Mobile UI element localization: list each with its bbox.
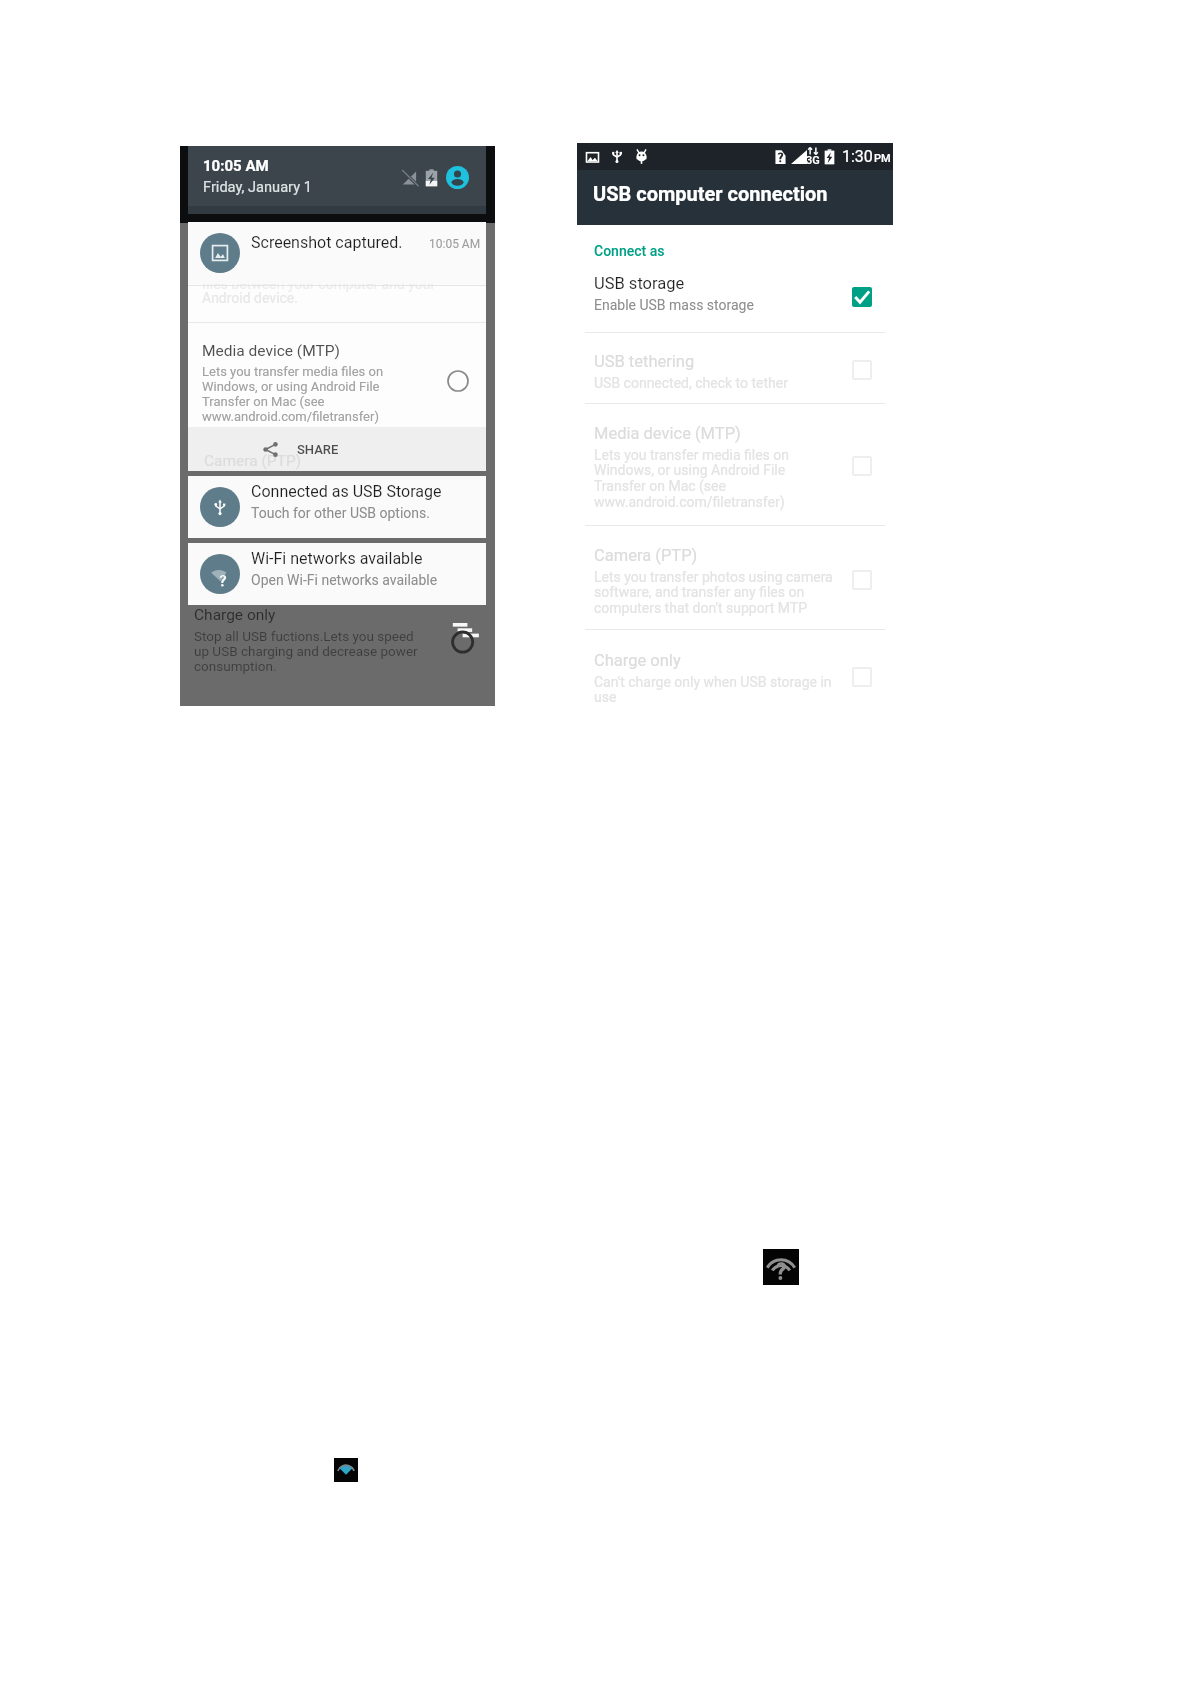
staticText: Lets you transfer media files on Windows… (202, 364, 384, 424)
button[interactable] (577, 264, 893, 324)
staticText: USB connected, check to tether (594, 375, 788, 391)
staticText: Camera (PTP) (204, 452, 302, 470)
button[interactable]: Wi-Fi networks available (188, 543, 486, 605)
staticText: Touch for other USB options. (251, 505, 430, 521)
button[interactable]: Connected as USB Storage (188, 476, 486, 538)
staticText: Screenshot captured. (251, 233, 403, 252)
staticText: USB tethering (594, 352, 695, 371)
staticText: 1:30 (842, 147, 873, 166)
staticText: Camera (PTP) (594, 546, 698, 565)
button[interactable]: Switch user (446, 166, 469, 189)
staticText: 10:05 AM (203, 157, 269, 175)
staticText: files between your computer and your (202, 276, 436, 292)
staticText: PM (874, 152, 891, 165)
staticText: Stop all USB fuctions.Lets you speed up … (194, 628, 418, 674)
staticText: Android device. (202, 290, 298, 306)
staticText: 3G (806, 154, 820, 167)
button[interactable] (577, 536, 893, 596)
staticText: Charge only (194, 606, 276, 624)
staticText: Media device (MTP) (594, 424, 741, 443)
staticText: Friday, January 1 (203, 178, 312, 195)
staticText: 10:05 AM (429, 237, 481, 251)
button[interactable] (577, 641, 893, 701)
staticText: Media device (MTP) (202, 342, 340, 360)
button[interactable] (577, 414, 893, 474)
staticText: Connected as USB Storage (251, 482, 442, 501)
button[interactable]: Wi-Fi icon (334, 1458, 358, 1482)
button[interactable]: Camera (PTP) (188, 427, 486, 471)
staticText: Lets you transfer media files on Windows… (594, 447, 789, 511)
staticText: Lets you transfer photos using camera so… (594, 569, 833, 617)
button[interactable]: Wi-Fi unknown icon (763, 1249, 799, 1285)
staticText: USB computer connection (593, 182, 828, 205)
staticText: Charge only (594, 651, 681, 670)
staticText: Connect as (594, 243, 665, 259)
staticText: Wi-Fi networks available (251, 549, 423, 568)
staticText: SHARE (297, 442, 339, 457)
staticText: Can't charge only when USB storage in us… (594, 674, 832, 706)
staticText: Enable USB mass storage (594, 297, 754, 313)
staticText: Open Wi-Fi networks available (251, 572, 438, 588)
button[interactable]: Screenshot captured. (188, 222, 486, 284)
staticText: USB storage (594, 274, 685, 293)
button[interactable] (577, 342, 893, 402)
